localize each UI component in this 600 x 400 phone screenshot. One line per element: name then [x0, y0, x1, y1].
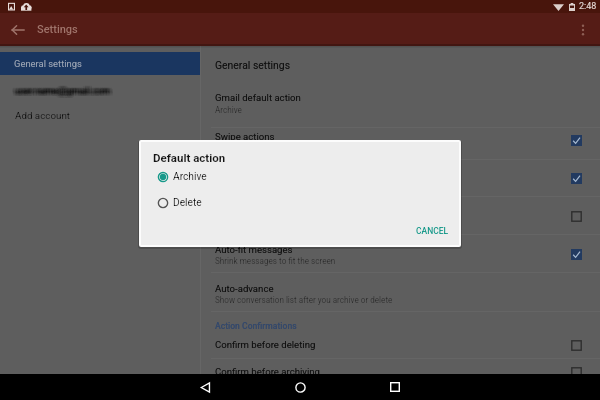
- button[interactable]: Gmail default action: [215, 90, 545, 104]
- staticText: Auto-advance: [215, 283, 274, 294]
- staticText: user.name@gmail.com: [12, 85, 108, 96]
- button[interactable]: Home: [282, 374, 318, 400]
- button[interactable]: Unchecked: [565, 361, 588, 384]
- staticText: user.name@gmail.com: [12, 84, 108, 95]
- staticText: user.name@gmail.com: [16, 87, 112, 98]
- staticText: user.name@gmail.com: [14, 87, 110, 98]
- staticText: Settings: [37, 23, 78, 36]
- button[interactable]: More options: [569, 16, 597, 44]
- staticText: user.name@gmail.com: [18, 87, 114, 98]
- staticText: Gmail default action: [215, 92, 301, 103]
- staticText: user.name@gmail.com: [14, 83, 110, 94]
- button[interactable]: Swipe actions: [215, 129, 545, 143]
- staticText: user.name@gmail.com: [17, 84, 113, 95]
- staticText: user.name@gmail.com: [12, 87, 108, 98]
- staticText: user.name@gmail.com: [14, 87, 110, 98]
- staticText: user.name@gmail.com: [18, 85, 114, 96]
- staticText: Confirm before archiving: [215, 366, 320, 377]
- staticText: General settings: [14, 58, 82, 69]
- staticText: user.name@gmail.com: [12, 87, 108, 98]
- staticText: Confirm before deleting: [215, 339, 316, 350]
- staticText: Archive: [173, 171, 207, 183]
- staticText: Show conversation list after you archive…: [215, 295, 393, 305]
- button[interactable]: General settings: [0, 52, 200, 75]
- staticText: user.name@gmail.com: [14, 84, 110, 95]
- staticText: user.name@gmail.com: [15, 87, 111, 98]
- staticText: user.name@gmail.com: [13, 84, 109, 95]
- staticText: Default action: [153, 151, 226, 164]
- staticText: Auto-fit messages: [215, 244, 293, 255]
- staticText: user.name@gmail.com: [13, 85, 109, 96]
- staticText: Swipe actions: [215, 131, 275, 142]
- staticText: user.name@gmail.com: [18, 84, 114, 95]
- staticText: user.name@gmail.com: [14, 84, 110, 95]
- button[interactable]: Back: [4, 16, 32, 44]
- staticText: user.name@gmail.com: [18, 86, 114, 97]
- staticText: user.name@gmail.com: [15, 86, 111, 97]
- button[interactable]: CANCEL: [409, 221, 455, 241]
- staticText: user.name@gmail.com: [17, 83, 113, 94]
- button[interactable]: Add account: [0, 102, 200, 128]
- staticText: Archive: [215, 105, 242, 115]
- button[interactable]: Unchecked: [565, 205, 588, 228]
- staticText: Delete: [173, 197, 202, 209]
- staticText: user.name@gmail.com: [16, 84, 112, 95]
- staticText: user.name@gmail.com: [12, 84, 108, 95]
- button[interactable]: Delete: [157, 192, 287, 214]
- staticText: user.name@gmail.com: [17, 84, 113, 95]
- staticText: user.name@gmail.com: [15, 87, 111, 98]
- button[interactable]: Unchecked: [565, 334, 588, 357]
- staticText: user.name@gmail.com: [18, 87, 114, 98]
- staticText: user.name@gmail.com: [17, 85, 113, 96]
- staticText: user.name@gmail.com: [18, 84, 114, 95]
- staticText: user.name@gmail.com: [15, 84, 111, 95]
- staticText: user.name@gmail.com: [12, 87, 108, 98]
- button[interactable]: Recents: [377, 374, 413, 400]
- staticText: user.name@gmail.com: [12, 84, 108, 95]
- button[interactable]: Auto-advance: [215, 281, 545, 295]
- staticText: Action Confirmations: [215, 321, 297, 331]
- button[interactable]: General settings: [215, 57, 545, 73]
- staticText: General settings: [215, 59, 291, 71]
- staticText: user.name@gmail.com: [18, 83, 114, 94]
- staticText: user.name@gmail.com: [17, 87, 113, 98]
- staticText: user.name@gmail.com: [16, 87, 112, 98]
- staticText: user.name@gmail.com: [12, 83, 108, 94]
- button[interactable]: Conversation view: [215, 167, 545, 181]
- button[interactable]: Sender image: [215, 205, 545, 219]
- staticText: user.name@gmail.com: [16, 83, 112, 94]
- staticText: user.name@gmail.com: [13, 87, 109, 98]
- staticText: 2:48: [579, 1, 597, 12]
- staticText: user.name@gmail.com: [16, 84, 112, 95]
- button[interactable]: Auto-fit messages: [215, 242, 545, 256]
- staticText: user.name@gmail.com: [13, 87, 109, 98]
- staticText: user.name@gmail.com: [17, 87, 113, 98]
- staticText: user.name@gmail.com: [15, 83, 111, 94]
- staticText: user.name@gmail.com: [12, 85, 108, 96]
- staticText: user.name@gmail.com: [18, 83, 114, 94]
- staticText: user.name@gmail.com: [18, 86, 114, 97]
- button[interactable]: Checked: [565, 243, 588, 266]
- staticText: user.name@gmail.com: [16, 86, 112, 97]
- staticText: Confirm before archiving: [215, 366, 320, 377]
- button[interactable]: Checked: [565, 167, 588, 190]
- staticText: user.name@gmail.com: [15, 85, 111, 96]
- staticText: user.name@gmail.com: [13, 86, 109, 97]
- button[interactable]: Archive: [157, 166, 287, 188]
- staticText: Confirm before deleting: [215, 339, 316, 350]
- staticText: user.name@gmail.com: [12, 84, 108, 95]
- button[interactable]: Confirm before deleting: [215, 337, 545, 351]
- staticText: Action Confirmations: [215, 321, 297, 331]
- staticText: user.name@gmail.com: [12, 86, 108, 97]
- button[interactable]: Confirm before archiving: [215, 364, 545, 378]
- button[interactable]: Back: [187, 374, 223, 400]
- staticText: user.name@gmail.com: [13, 84, 109, 95]
- button[interactable]: Checked: [565, 129, 588, 152]
- button[interactable]: Account email: [0, 77, 200, 103]
- staticText: Add account: [15, 110, 71, 121]
- staticText: General settings: [215, 59, 291, 71]
